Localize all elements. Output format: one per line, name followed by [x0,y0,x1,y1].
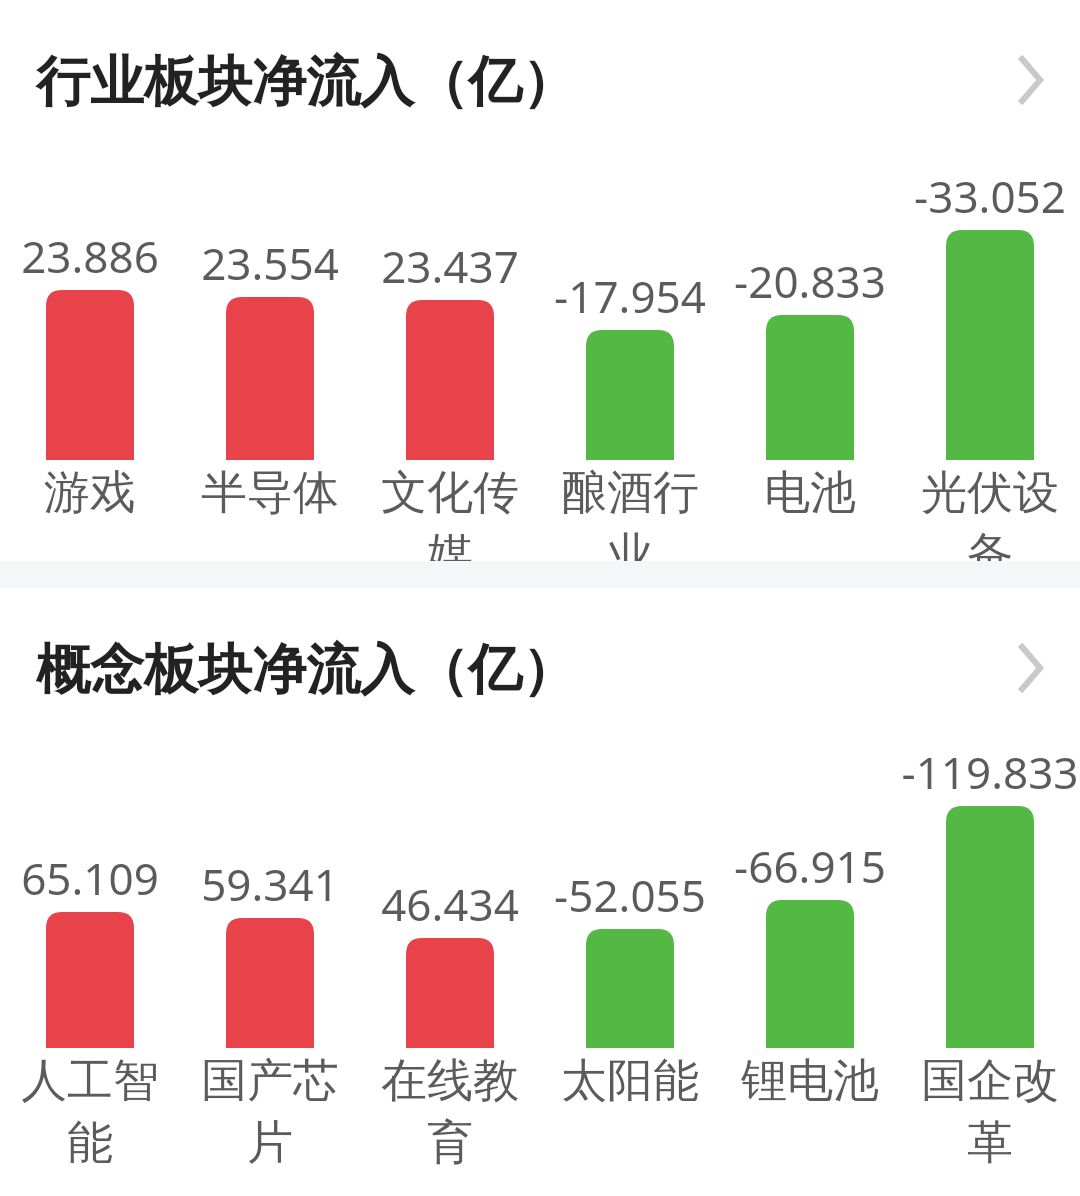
staticText: 在线教育 [360,1052,540,1172]
button[interactable]: -33.052 [900,160,1080,518]
staticText: -33.052 [900,166,1080,226]
staticText: 国产芯片 [180,1052,360,1172]
staticText: 电池 [720,464,900,522]
button[interactable]: 行业板块净流入（亿） [0,0,1080,160]
button[interactable]: 概念板块净流入（亿） [0,588,1080,748]
button[interactable]: -66.915 [720,748,900,1106]
staticText: -17.954 [540,266,720,326]
button[interactable]: 23.437 [360,160,540,518]
staticText: 46.434 [360,874,540,934]
staticText: 文化传媒 [360,464,540,584]
staticText: 概念板块净流入（亿） [36,636,576,704]
staticText: -66.915 [720,836,900,896]
staticText: 行业板块净流入（亿） [36,48,576,116]
staticText: 23.886 [0,226,180,286]
button[interactable]: 46.434 [360,748,540,1106]
staticText: 23.554 [180,233,360,293]
staticText: 酿酒行业 [540,464,720,584]
staticText: -119.833 [900,742,1080,802]
button[interactable]: -119.833 [900,748,1080,1106]
staticText: 太阳能 [540,1052,720,1110]
button[interactable]: -20.833 [720,160,900,518]
button[interactable]: 65.109 [0,748,180,1106]
button[interactable]: 23.886 [0,160,180,518]
staticText: 光伏设备 [900,464,1080,584]
staticText: 游戏 [0,464,180,522]
button[interactable]: -17.954 [540,160,720,518]
staticText: 国企改革 [900,1052,1080,1172]
staticText: 59.341 [180,854,360,914]
staticText: 23.437 [360,236,540,296]
staticText: 人工智能 [0,1052,180,1172]
staticText: -20.833 [720,251,900,311]
button[interactable]: 59.341 [180,748,360,1106]
button[interactable]: 23.554 [180,160,360,518]
button[interactable]: -52.055 [540,748,720,1106]
staticText: 65.109 [0,848,180,908]
staticText: -52.055 [540,865,720,925]
staticText: 半导体 [180,464,360,522]
staticText: 锂电池 [720,1052,900,1110]
